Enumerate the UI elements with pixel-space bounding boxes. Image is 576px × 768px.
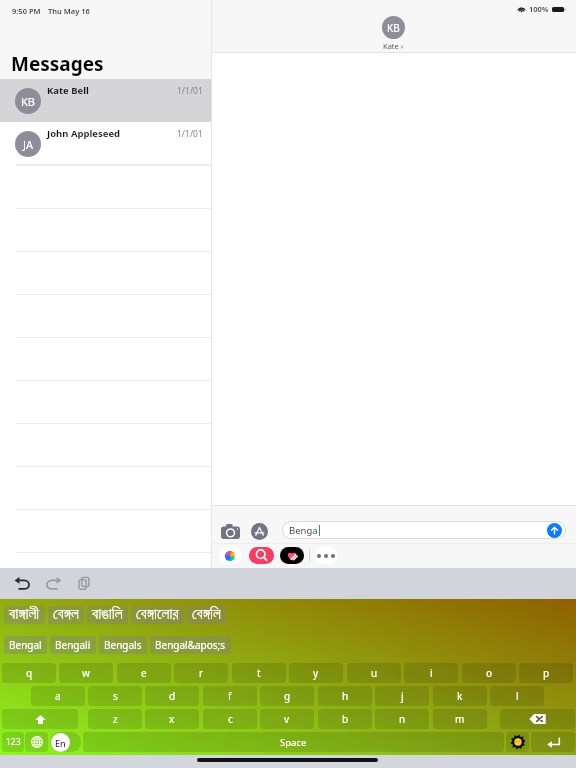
staticText: e bbox=[141, 666, 147, 680]
staticText: s bbox=[113, 689, 118, 703]
staticText: h bbox=[342, 689, 349, 703]
button[interactable]: Bengal bbox=[4, 636, 47, 654]
button[interactable]: z bbox=[88, 709, 142, 729]
staticText: বেঙ্গলি bbox=[192, 607, 221, 623]
button[interactable]: i bbox=[404, 663, 458, 683]
staticText: c bbox=[228, 712, 233, 726]
staticText: 1/1/01 bbox=[177, 128, 203, 140]
staticText: t bbox=[257, 666, 261, 680]
button[interactable]: Shift bbox=[2, 709, 78, 729]
staticText: Bengali bbox=[55, 638, 91, 652]
staticText: JA bbox=[23, 137, 34, 152]
button[interactable]: h bbox=[318, 686, 372, 706]
button[interactable]: Bengali bbox=[50, 636, 96, 654]
button[interactable]: l bbox=[490, 686, 544, 706]
button[interactable]: KB bbox=[0, 79, 211, 122]
staticText: বাঙ্গালী bbox=[9, 607, 40, 623]
button[interactable]: p bbox=[519, 663, 573, 683]
staticText: j bbox=[401, 689, 404, 703]
staticText: k bbox=[457, 689, 463, 703]
button[interactable]: k bbox=[433, 686, 487, 706]
staticText: i bbox=[430, 666, 433, 680]
staticText: r bbox=[199, 666, 204, 680]
button[interactable]: App Store bbox=[251, 523, 268, 540]
button[interactable]: JA bbox=[0, 122, 211, 165]
button[interactable]: d bbox=[145, 686, 199, 706]
staticText: Kate › bbox=[383, 41, 404, 51]
staticText: বেঙ্গালোর bbox=[136, 607, 179, 623]
button[interactable]: a bbox=[31, 686, 85, 706]
staticText: n bbox=[399, 712, 406, 726]
staticText: Space bbox=[280, 736, 307, 749]
button[interactable]: বেঙ্গলি bbox=[187, 606, 226, 624]
button[interactable]: n bbox=[375, 709, 429, 729]
staticText: w bbox=[82, 666, 90, 680]
button[interactable]: Redo bbox=[45, 575, 62, 592]
staticText: g bbox=[284, 689, 291, 703]
staticText: l bbox=[516, 689, 519, 703]
button[interactable]: y bbox=[289, 663, 343, 683]
button[interactable]: Language toggle bbox=[50, 732, 81, 752]
staticText: m bbox=[455, 712, 465, 726]
button[interactable]: Benga bbox=[283, 522, 565, 538]
button[interactable]: w bbox=[59, 663, 113, 683]
button[interactable]: s bbox=[88, 686, 142, 706]
button[interactable]: Bengal&apos;s bbox=[150, 636, 231, 654]
button[interactable]: Paste bbox=[76, 575, 93, 592]
staticText: Bengal bbox=[9, 638, 42, 652]
button[interactable]: Space bbox=[83, 732, 504, 752]
button[interactable]: Bengals bbox=[99, 636, 147, 654]
button[interactable]: বাঙালি bbox=[87, 606, 128, 624]
staticText: Benga bbox=[289, 524, 318, 537]
button[interactable]: o bbox=[462, 663, 516, 683]
button[interactable]: Send bbox=[547, 523, 562, 538]
button[interactable]: t bbox=[232, 663, 286, 683]
button[interactable]: q bbox=[2, 663, 56, 683]
button[interactable]: u bbox=[347, 663, 401, 683]
button[interactable]: Change language bbox=[25, 732, 48, 752]
button[interactable]: b bbox=[318, 709, 372, 729]
staticText: 100% bbox=[529, 4, 549, 14]
button[interactable]: g bbox=[260, 686, 314, 706]
button[interactable]: f bbox=[203, 686, 257, 706]
button[interactable]: Images bbox=[249, 547, 274, 564]
button[interactable]: বেঙ্গল bbox=[48, 606, 84, 624]
button[interactable]: Camera bbox=[221, 524, 240, 539]
button[interactable]: Undo bbox=[14, 575, 31, 592]
button[interactable]: বেঙ্গালোর bbox=[131, 606, 184, 624]
button[interactable]: Settings bbox=[506, 732, 529, 752]
button[interactable]: x bbox=[145, 709, 199, 729]
staticText: v bbox=[284, 712, 290, 726]
button[interactable]: Photos bbox=[219, 547, 241, 564]
staticText: 123 bbox=[6, 736, 21, 748]
staticText: q bbox=[26, 666, 33, 680]
button[interactable]: Return bbox=[531, 732, 575, 752]
staticText: u bbox=[371, 666, 378, 680]
staticText: f bbox=[228, 689, 232, 703]
button[interactable]: Backspace bbox=[500, 709, 575, 729]
button[interactable]: Digital Touch bbox=[280, 547, 304, 564]
staticText: b bbox=[342, 712, 349, 726]
staticText: Kate Bell bbox=[47, 84, 89, 97]
staticText: z bbox=[113, 712, 118, 726]
button[interactable]: v bbox=[260, 709, 314, 729]
button[interactable]: r bbox=[174, 663, 228, 683]
staticText: KB bbox=[387, 21, 400, 35]
button[interactable]: বাঙ্গালী bbox=[4, 606, 45, 624]
staticText: KB bbox=[21, 94, 35, 109]
staticText: Bengal&apos;s bbox=[155, 638, 226, 652]
button[interactable]: More apps bbox=[315, 547, 337, 564]
staticText: বেঙ্গল bbox=[53, 607, 79, 623]
staticText: o bbox=[486, 666, 493, 680]
staticText: Messages bbox=[11, 51, 104, 77]
button[interactable]: Kate contact bbox=[382, 16, 405, 51]
button[interactable]: c bbox=[203, 709, 257, 729]
staticText: 1/1/01 bbox=[177, 85, 203, 97]
button[interactable]: e bbox=[117, 663, 171, 683]
staticText: x bbox=[169, 712, 175, 726]
staticText: y bbox=[313, 666, 319, 680]
button[interactable]: j bbox=[375, 686, 429, 706]
button[interactable]: m bbox=[433, 709, 487, 729]
staticText: John Appleseed bbox=[47, 127, 121, 140]
button[interactable]: 123 bbox=[2, 732, 24, 752]
